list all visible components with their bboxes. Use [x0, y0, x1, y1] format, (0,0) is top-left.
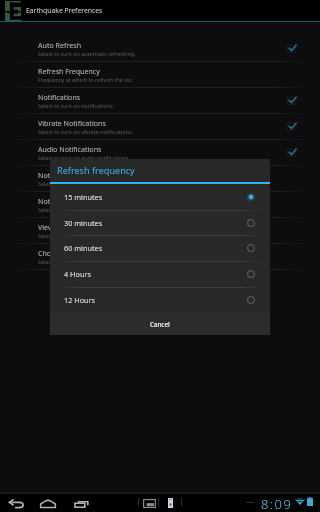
staticText: Notification Light [38, 196, 96, 206]
staticText: View Settings [38, 222, 83, 232]
button[interactable]: Recent apps [72, 497, 90, 510]
staticText: Refresh frequency [57, 164, 135, 176]
button[interactable]: Cancel [50, 312, 270, 335]
staticText: Select to turn on audio notifications. [38, 154, 130, 161]
button[interactable]: 30 minutes [50, 210, 270, 236]
staticText: 4 Hours [64, 269, 232, 279]
staticText: Select to turn on vibrate notifications. [38, 128, 133, 135]
button[interactable]: 15 minutes [50, 184, 270, 210]
button[interactable]: USB connection [165, 497, 176, 509]
staticText: Notifications [38, 92, 81, 102]
staticText: 30 minutes [64, 218, 232, 228]
button[interactable]: Vibrate Notifications [0, 114, 320, 139]
staticText: Vibrate Notifications [38, 118, 106, 128]
staticText: Cancel [150, 320, 170, 328]
staticText: 15 minutes [64, 192, 232, 202]
button[interactable]: Back [5, 497, 27, 510]
button[interactable]: 12 Hours [50, 287, 270, 313]
button[interactable]: Refresh Frequency [0, 62, 320, 87]
staticText: 12 Hours [64, 295, 232, 305]
button[interactable]: Auto Refresh [0, 36, 320, 61]
staticText: Refresh Frequency [38, 66, 100, 76]
button[interactable]: Refresh frequency [50, 159, 270, 182]
staticText: Auto Refresh [38, 40, 82, 50]
staticText: Choose Provider [38, 248, 93, 258]
button[interactable]: Choose Provider [0, 244, 320, 269]
staticText: Select to turn on notifications. [38, 102, 114, 109]
button[interactable]: Screenshot [141, 497, 157, 509]
button[interactable]: Notifications [0, 88, 320, 113]
button[interactable]: View Settings [0, 218, 320, 243]
button[interactable]: 60 minutes [50, 235, 270, 261]
staticText: Select the notification sound. [38, 180, 112, 187]
button[interactable]: 4 Hours [50, 261, 270, 287]
staticText: Frequency at which to refresh the list. [38, 76, 133, 83]
staticText: Select to change view settings. [38, 232, 116, 239]
staticText: Select to turn on notification light. [38, 206, 125, 213]
staticText: Audio Notifications [38, 144, 102, 154]
staticText: 8:09 [261, 495, 293, 512]
staticText: 60 minutes [64, 243, 232, 253]
button[interactable]: Home [39, 497, 57, 510]
staticText: Select the earthquake data provider. [38, 258, 130, 265]
staticText: Notification Sound [38, 170, 100, 180]
button[interactable]: Notification Light [0, 192, 320, 217]
staticText: Earthquake Preferences [26, 6, 103, 15]
button[interactable]: Audio Notifications [0, 140, 320, 165]
button[interactable]: Notification Sound [0, 166, 320, 191]
staticText: Select to turn on automatic refreshing. [38, 50, 136, 57]
